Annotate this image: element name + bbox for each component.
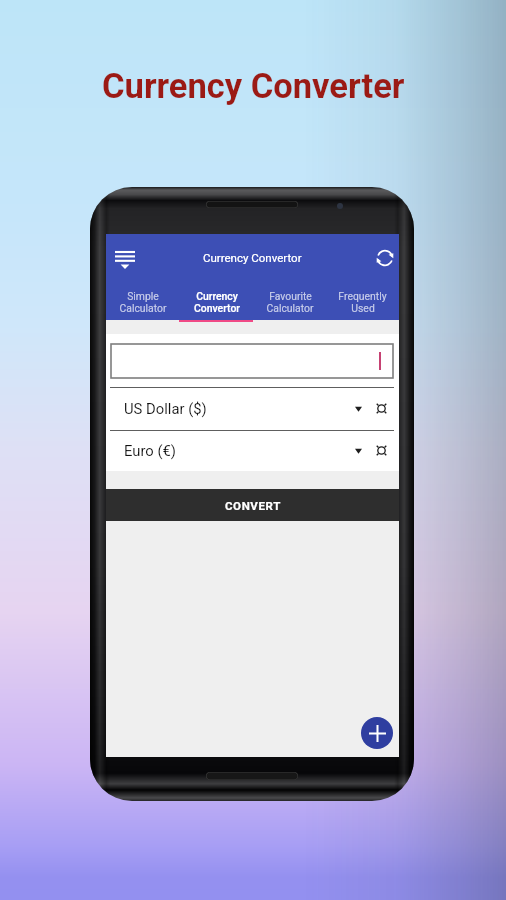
staticText: Used: [351, 302, 375, 314]
button[interactable]: Euro (€): [106, 430, 399, 471]
staticText: Frequently: [338, 290, 387, 302]
button[interactable]: Currency: [180, 281, 253, 305]
button[interactable]: US Dollar ($): [106, 387, 399, 429]
staticText: US Dollar ($): [124, 400, 355, 417]
staticText: Calculator: [119, 302, 167, 314]
staticText: Currency Convertor: [203, 251, 302, 264]
staticText: Currency: [196, 290, 238, 302]
staticText: Currency Converter: [102, 66, 405, 106]
staticText: Convertor: [194, 302, 240, 314]
button[interactable]: Frequently: [326, 281, 399, 305]
staticText: Calculator: [266, 302, 314, 314]
staticText: Favourite: [269, 290, 312, 302]
button[interactable]: Simple: [106, 281, 180, 305]
button[interactable]: Favourite: [253, 281, 326, 305]
button[interactable]: CONVERT: [106, 489, 399, 521]
staticText: Euro (€): [124, 442, 355, 459]
button[interactable]: Add: [361, 717, 393, 749]
staticText: CONVERT: [225, 499, 281, 512]
staticText: Simple: [127, 290, 159, 302]
button[interactable]: Menu: [108, 241, 142, 275]
button[interactable]: Refresh: [368, 241, 402, 275]
